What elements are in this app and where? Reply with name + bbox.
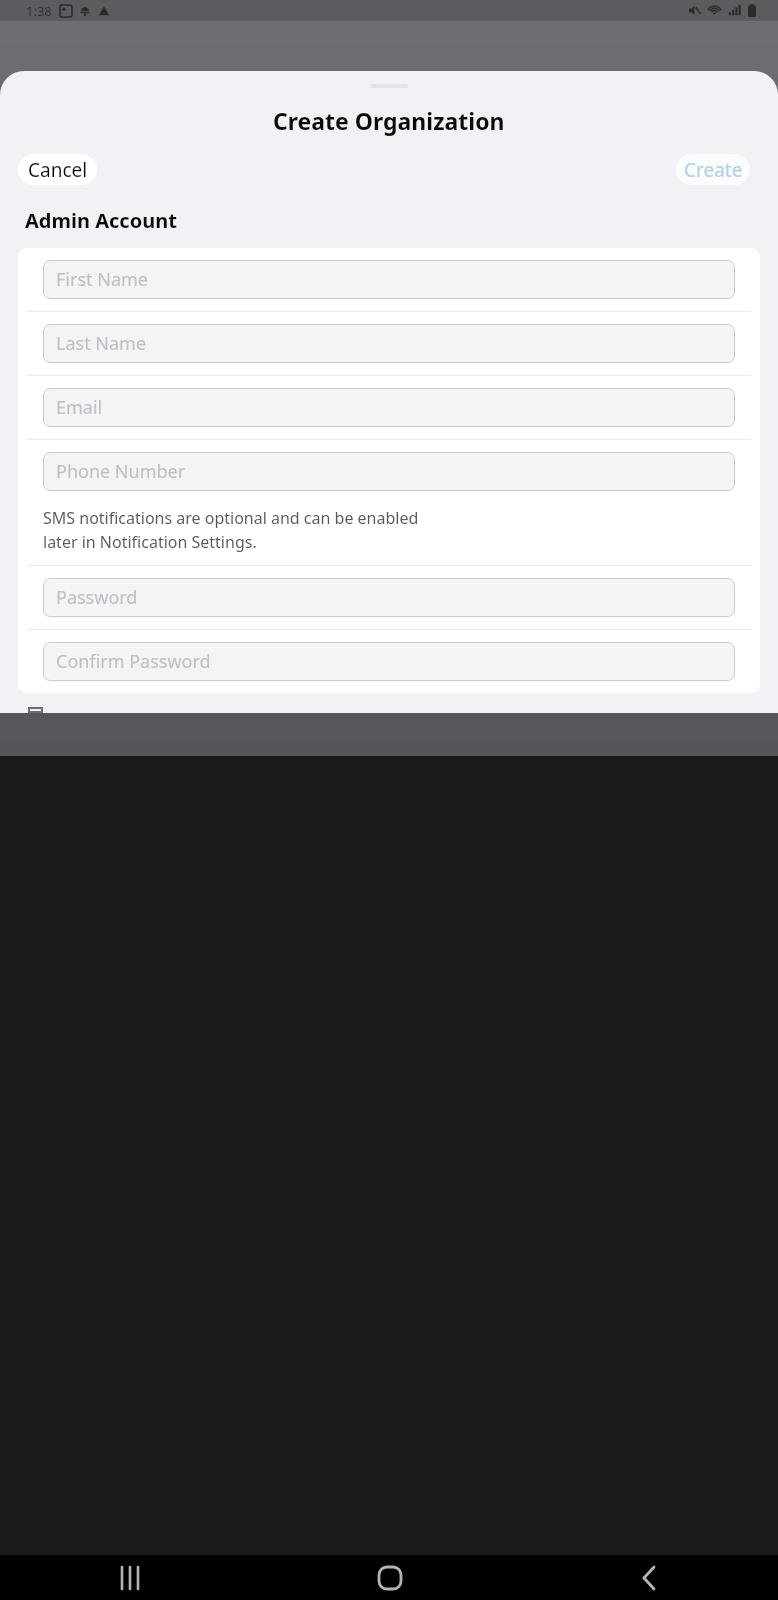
staticText: Password xyxy=(56,585,138,610)
button[interactable]: Phone Number xyxy=(43,452,735,491)
other: Agree to terms checkbox xyxy=(28,707,43,713)
staticText: Confirm Password xyxy=(56,649,211,674)
button[interactable]: First Name xyxy=(43,260,735,299)
staticText: Admin Account xyxy=(25,207,177,234)
button[interactable]: Last Name xyxy=(43,324,735,363)
staticText: later in Notification Settings. xyxy=(43,531,257,553)
button[interactable]: Home xyxy=(260,1555,519,1600)
button[interactable]: Confirm Password xyxy=(43,642,735,681)
button[interactable]: Recent apps xyxy=(0,1555,260,1600)
staticText: Create Organization xyxy=(273,105,505,136)
staticText: Phone Number xyxy=(56,459,186,484)
button[interactable]: Back xyxy=(519,1555,778,1600)
staticText: Create xyxy=(684,157,743,183)
staticText: 1:38 xyxy=(26,2,52,20)
staticText: Cancel xyxy=(28,157,88,183)
button[interactable]: Email xyxy=(43,388,735,427)
button[interactable]: Agree to terms checkbox xyxy=(28,707,758,713)
button[interactable]: Create xyxy=(676,154,750,185)
staticText: Last Name xyxy=(56,331,147,356)
staticText: First Name xyxy=(56,267,148,292)
staticText: Email xyxy=(56,395,103,420)
button[interactable]: Password xyxy=(43,578,735,617)
staticText: SMS notifications are optional and can b… xyxy=(43,507,419,529)
button[interactable]: Cancel xyxy=(18,154,97,185)
